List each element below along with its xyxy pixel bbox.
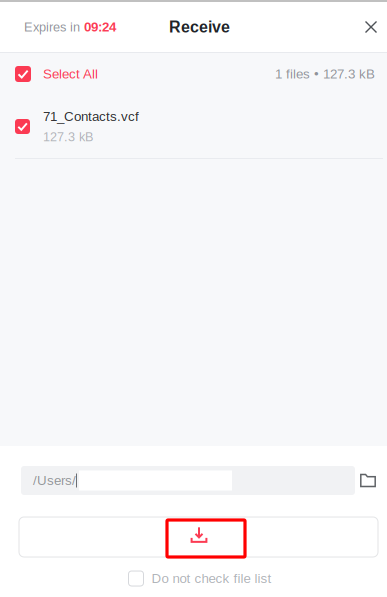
staticText: Select All <box>43 67 98 81</box>
button[interactable] <box>19 517 378 557</box>
button[interactable]: Choose folder <box>355 466 381 495</box>
button[interactable]: Close <box>355 11 387 43</box>
staticText: 09:24 <box>84 20 116 34</box>
staticText: 71_Contacts.vcf <box>43 109 139 124</box>
button[interactable]: Select All <box>0 60 98 88</box>
staticText: /Users/ <box>33 473 76 488</box>
staticText: 127.3 kB <box>43 130 93 144</box>
button[interactable]: Do not check file list <box>128 571 271 586</box>
button[interactable]: 71_Contacts.vcf <box>0 101 139 152</box>
staticText: 1 files • 127.3 kB <box>275 67 375 81</box>
staticText: Do not check file list <box>151 571 271 586</box>
staticText: Expires in <box>24 20 80 34</box>
staticText: Receive <box>169 18 230 36</box>
